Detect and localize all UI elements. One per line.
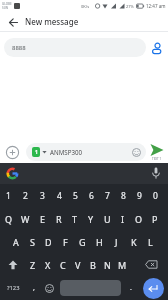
- staticText: N: [104, 259, 111, 271]
- staticText: 0K/s: [81, 4, 90, 9]
- button[interactable]: P: [147, 207, 163, 230]
- staticText: U: [104, 213, 111, 225]
- button[interactable]: [5, 166, 20, 181]
- staticText: 9: [137, 190, 142, 202]
- staticText: Z: [30, 259, 36, 271]
- button[interactable]: R: [51, 207, 67, 230]
- button[interactable]: T: [67, 207, 83, 230]
- button[interactable]: 4: [51, 184, 67, 207]
- button[interactable]: F: [57, 230, 74, 253]
- staticText: Y: [88, 213, 94, 225]
- button[interactable]: [60, 280, 121, 296]
- staticText: GLOBE: [2, 2, 12, 6]
- staticText: V: [75, 259, 81, 271]
- staticText: B: [90, 259, 96, 271]
- button[interactable]: 5: [67, 184, 83, 207]
- staticText: 12:47 am: [146, 3, 166, 9]
- staticText: L: [148, 236, 153, 248]
- staticText: Q: [5, 213, 13, 225]
- staticText: X: [45, 259, 51, 271]
- button[interactable]: 7: [99, 184, 115, 207]
- staticText: TEXT 1: [152, 157, 162, 161]
- button[interactable]: [41, 276, 58, 300]
- button[interactable]: L: [142, 230, 159, 253]
- staticText: SUN: [2, 6, 9, 10]
- button[interactable]: [137, 253, 165, 276]
- staticText: 1: [35, 149, 38, 156]
- button[interactable]: O: [131, 207, 147, 230]
- button[interactable]: V: [70, 253, 85, 276]
- button[interactable]: [146, 38, 166, 58]
- button[interactable]: C: [55, 253, 70, 276]
- button[interactable]: 1: [0, 184, 17, 207]
- staticText: K: [131, 236, 137, 248]
- staticText: 2: [23, 190, 28, 202]
- staticText: H: [96, 236, 103, 248]
- staticText: I: [121, 213, 125, 225]
- button[interactable]: B: [85, 253, 100, 276]
- staticText: ?123: [7, 284, 20, 292]
- button[interactable]: I: [115, 207, 131, 230]
- staticText: E: [40, 213, 46, 225]
- button[interactable]: [4, 144, 20, 160]
- staticText: 8888: [12, 44, 26, 52]
- staticText: New message: [25, 16, 79, 27]
- button[interactable]: [139, 276, 168, 300]
- button[interactable]: S: [24, 230, 40, 253]
- button[interactable]: ?123: [0, 276, 26, 300]
- button[interactable]: [0, 253, 25, 276]
- button[interactable]: [6, 15, 20, 29]
- button[interactable]: N: [100, 253, 115, 276]
- staticText: F: [63, 236, 68, 248]
- staticText: S: [30, 236, 35, 248]
- button[interactable]: H: [91, 230, 108, 253]
- button[interactable]: U: [99, 207, 115, 230]
- button[interactable]: K: [125, 230, 142, 253]
- staticText: 7: [105, 190, 110, 202]
- button[interactable]: J: [108, 230, 125, 253]
- button[interactable]: W: [17, 207, 34, 230]
- staticText: .: [130, 283, 132, 293]
- button[interactable]: 3: [34, 184, 51, 207]
- staticText: T: [72, 213, 78, 225]
- staticText: 0: [153, 190, 158, 202]
- button[interactable]: ,: [26, 276, 41, 300]
- staticText: ANMSP300: [50, 148, 83, 156]
- staticText: 5: [73, 190, 78, 202]
- button[interactable]: 8: [115, 184, 131, 207]
- staticText: 3: [40, 190, 45, 202]
- staticText: 27%: [126, 4, 134, 9]
- button[interactable]: Z: [25, 253, 40, 276]
- staticText: A: [13, 236, 19, 248]
- button[interactable]: Y: [83, 207, 99, 230]
- staticText: C: [60, 259, 66, 271]
- staticText: 8: [121, 190, 126, 202]
- button[interactable]: Q: [0, 207, 17, 230]
- button[interactable]: 8888: [4, 38, 146, 57]
- staticText: W: [21, 213, 30, 225]
- staticText: G: [79, 236, 86, 248]
- staticText: R: [56, 213, 62, 225]
- button[interactable]: 0: [147, 184, 163, 207]
- button[interactable]: E: [34, 207, 51, 230]
- button[interactable]: TEXT 1: [146, 141, 168, 163]
- button[interactable]: A: [8, 230, 24, 253]
- button[interactable]: 1: [26, 143, 146, 161]
- button[interactable]: 9: [131, 184, 147, 207]
- button[interactable]: [148, 166, 163, 181]
- staticText: 6: [89, 190, 94, 202]
- staticText: O: [135, 213, 143, 225]
- button[interactable]: .: [123, 276, 139, 300]
- staticText: D: [45, 236, 52, 248]
- button[interactable]: D: [40, 230, 57, 253]
- staticText: M: [118, 259, 127, 271]
- staticText: 1: [6, 190, 11, 202]
- button[interactable]: M: [115, 253, 130, 276]
- button[interactable]: G: [74, 230, 91, 253]
- button[interactable]: 2: [17, 184, 34, 207]
- staticText: J: [115, 236, 118, 248]
- button[interactable]: 6: [83, 184, 99, 207]
- staticText: 4: [57, 190, 62, 202]
- button[interactable]: X: [40, 253, 55, 276]
- staticText: ,: [33, 283, 35, 293]
